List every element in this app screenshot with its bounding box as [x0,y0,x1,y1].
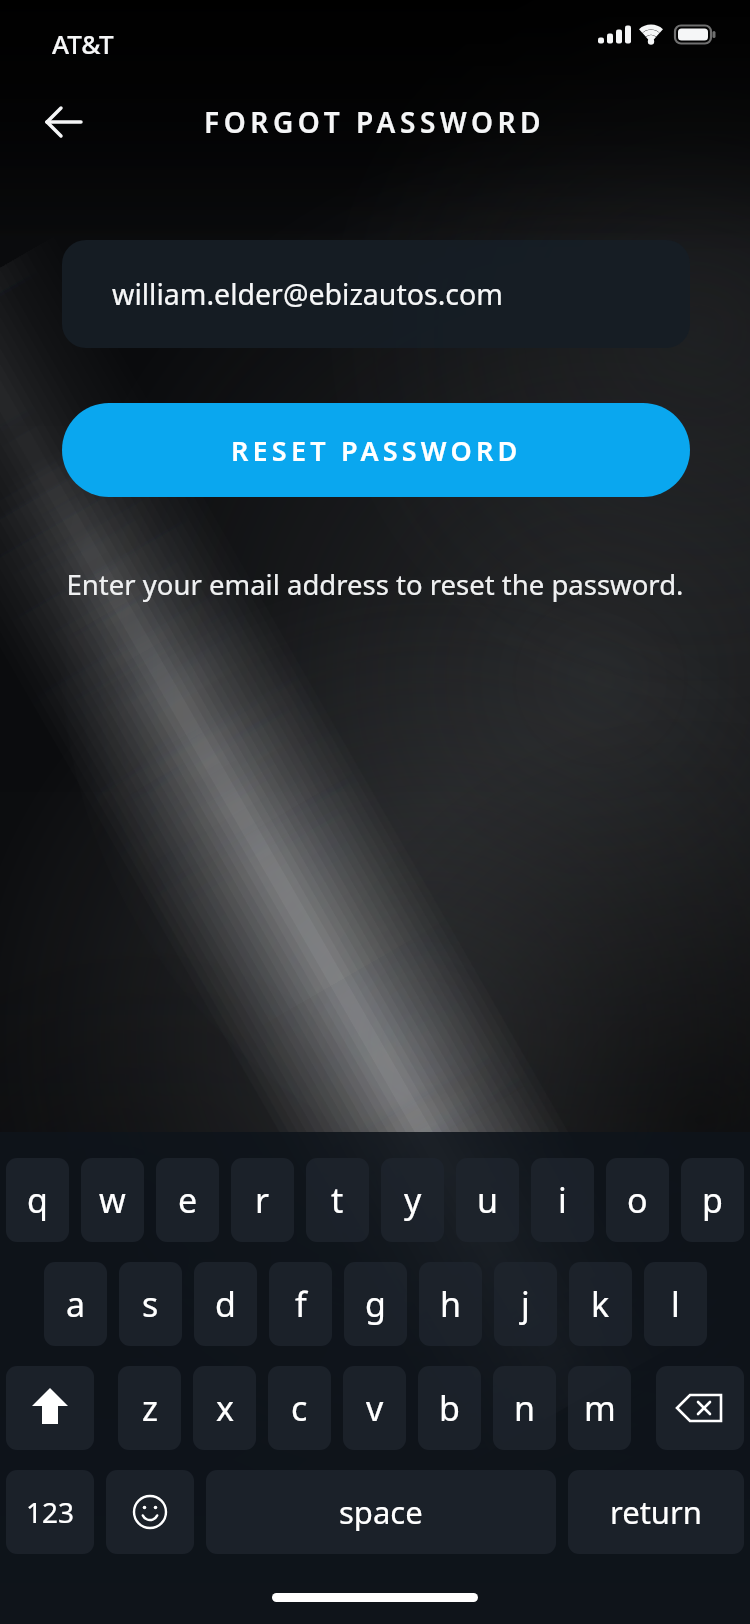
staticText: l [671,1281,680,1327]
staticText: c [291,1385,308,1431]
staticText: b [439,1385,460,1431]
button[interactable]: l [644,1262,707,1346]
button[interactable]: s [119,1262,182,1346]
staticText: g [365,1281,386,1327]
staticText: k [591,1281,610,1327]
staticText: Enter your email address to reset the pa… [0,566,750,603]
staticText: return [610,1491,702,1533]
staticText: r [255,1177,270,1223]
staticText: RESET PASSWORD [231,432,522,469]
button[interactable]: c [268,1366,331,1450]
button[interactable]: f [269,1262,332,1346]
button[interactable]: u [456,1158,519,1242]
button[interactable]: t [306,1158,369,1242]
staticText: o [627,1177,648,1223]
button[interactable] [6,1366,94,1450]
button[interactable]: n [493,1366,556,1450]
button[interactable]: y [381,1158,444,1242]
staticText: space [339,1491,423,1533]
button[interactable] [34,92,94,152]
button[interactable]: i [531,1158,594,1242]
button[interactable]: q [6,1158,69,1242]
staticText: AT&T [52,26,114,61]
button[interactable]: r [231,1158,294,1242]
staticText: william.elder@ebizautos.com [112,275,503,314]
button[interactable]: return [568,1470,744,1554]
staticText: FORGOT PASSWORD [204,103,546,141]
staticText: f [295,1281,307,1327]
button[interactable]: w [81,1158,144,1242]
staticText: q [27,1177,48,1223]
staticText: u [477,1177,499,1223]
button[interactable]: william.elder@ebizautos.com [62,240,690,348]
button[interactable]: g [344,1262,407,1346]
button[interactable]: z [118,1366,181,1450]
button[interactable]: o [606,1158,669,1242]
button[interactable]: v [343,1366,406,1450]
button[interactable]: k [569,1262,632,1346]
button[interactable]: p [681,1158,744,1242]
button[interactable]: 123 [6,1470,94,1554]
button[interactable] [106,1470,194,1554]
button[interactable]: h [419,1262,482,1346]
staticText: x [216,1385,234,1431]
staticText: i [558,1177,567,1223]
staticText: z [142,1385,158,1431]
staticText: j [521,1281,530,1327]
button[interactable]: m [568,1366,631,1450]
staticText: h [440,1281,462,1327]
button[interactable]: a [44,1262,107,1346]
staticText: p [702,1177,723,1223]
staticText: w [99,1177,126,1223]
staticText: d [215,1281,236,1327]
staticText: t [331,1177,344,1223]
button[interactable]: e [156,1158,219,1242]
button[interactable]: RESET PASSWORD [62,403,690,497]
staticText: e [178,1177,198,1223]
staticText: 123 [26,1493,75,1531]
staticText: a [66,1281,86,1327]
staticText: s [142,1281,159,1327]
staticText: m [584,1385,616,1431]
button[interactable]: b [418,1366,481,1450]
button[interactable] [656,1366,744,1450]
button[interactable]: space [206,1470,556,1554]
staticText: v [366,1385,384,1431]
staticText: n [514,1385,536,1431]
staticText: y [404,1177,422,1223]
button[interactable]: x [193,1366,256,1450]
button[interactable]: d [194,1262,257,1346]
button[interactable]: j [494,1262,557,1346]
